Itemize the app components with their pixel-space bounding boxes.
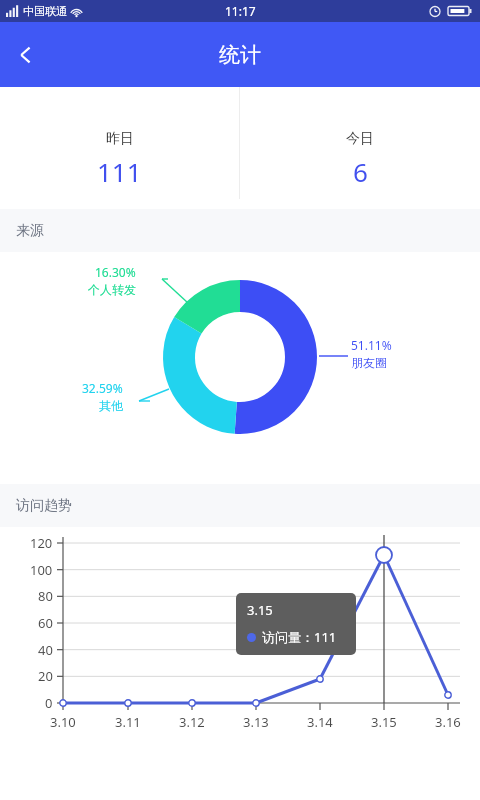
staticText: 40: [38, 641, 53, 659]
staticText: 3.15: [371, 713, 397, 731]
staticText: 32.59%: [82, 380, 123, 396]
staticText: 80: [38, 587, 53, 605]
staticText: 3.14: [307, 713, 333, 731]
staticText: 0: [45, 694, 53, 712]
button[interactable]: 今日: [240, 87, 480, 189]
staticText: 朋友圈: [351, 355, 387, 370]
staticText: 11:17: [225, 3, 256, 19]
staticText: 今日: [346, 130, 374, 148]
button[interactable]: 昨日: [0, 87, 239, 189]
staticText: 个人转发: [88, 282, 136, 297]
staticText: 16.30%: [95, 264, 136, 280]
staticText: 访问量：111: [262, 628, 337, 646]
staticText: 访问趋势: [16, 497, 72, 515]
staticText: 120: [30, 534, 53, 552]
staticText: 统计: [219, 42, 261, 68]
staticText: 6: [353, 154, 368, 189]
staticText: 51.11%: [351, 337, 392, 353]
staticText: 3.13: [243, 713, 269, 731]
staticText: 其他: [99, 398, 123, 413]
staticText: 3.12: [179, 713, 205, 731]
staticText: 3.16: [435, 713, 461, 731]
staticText: 111: [97, 154, 142, 189]
staticText: 100: [30, 561, 53, 579]
staticText: 3.10: [50, 713, 76, 731]
staticText: 3.15: [247, 601, 273, 619]
staticText: 来源: [16, 222, 44, 240]
staticText: 20: [38, 667, 53, 685]
staticText: 昨日: [106, 130, 134, 148]
button[interactable]: Back: [0, 29, 52, 81]
staticText: 3.11: [115, 713, 141, 731]
staticText: 60: [38, 614, 53, 632]
staticText: 中国联通: [23, 4, 67, 18]
